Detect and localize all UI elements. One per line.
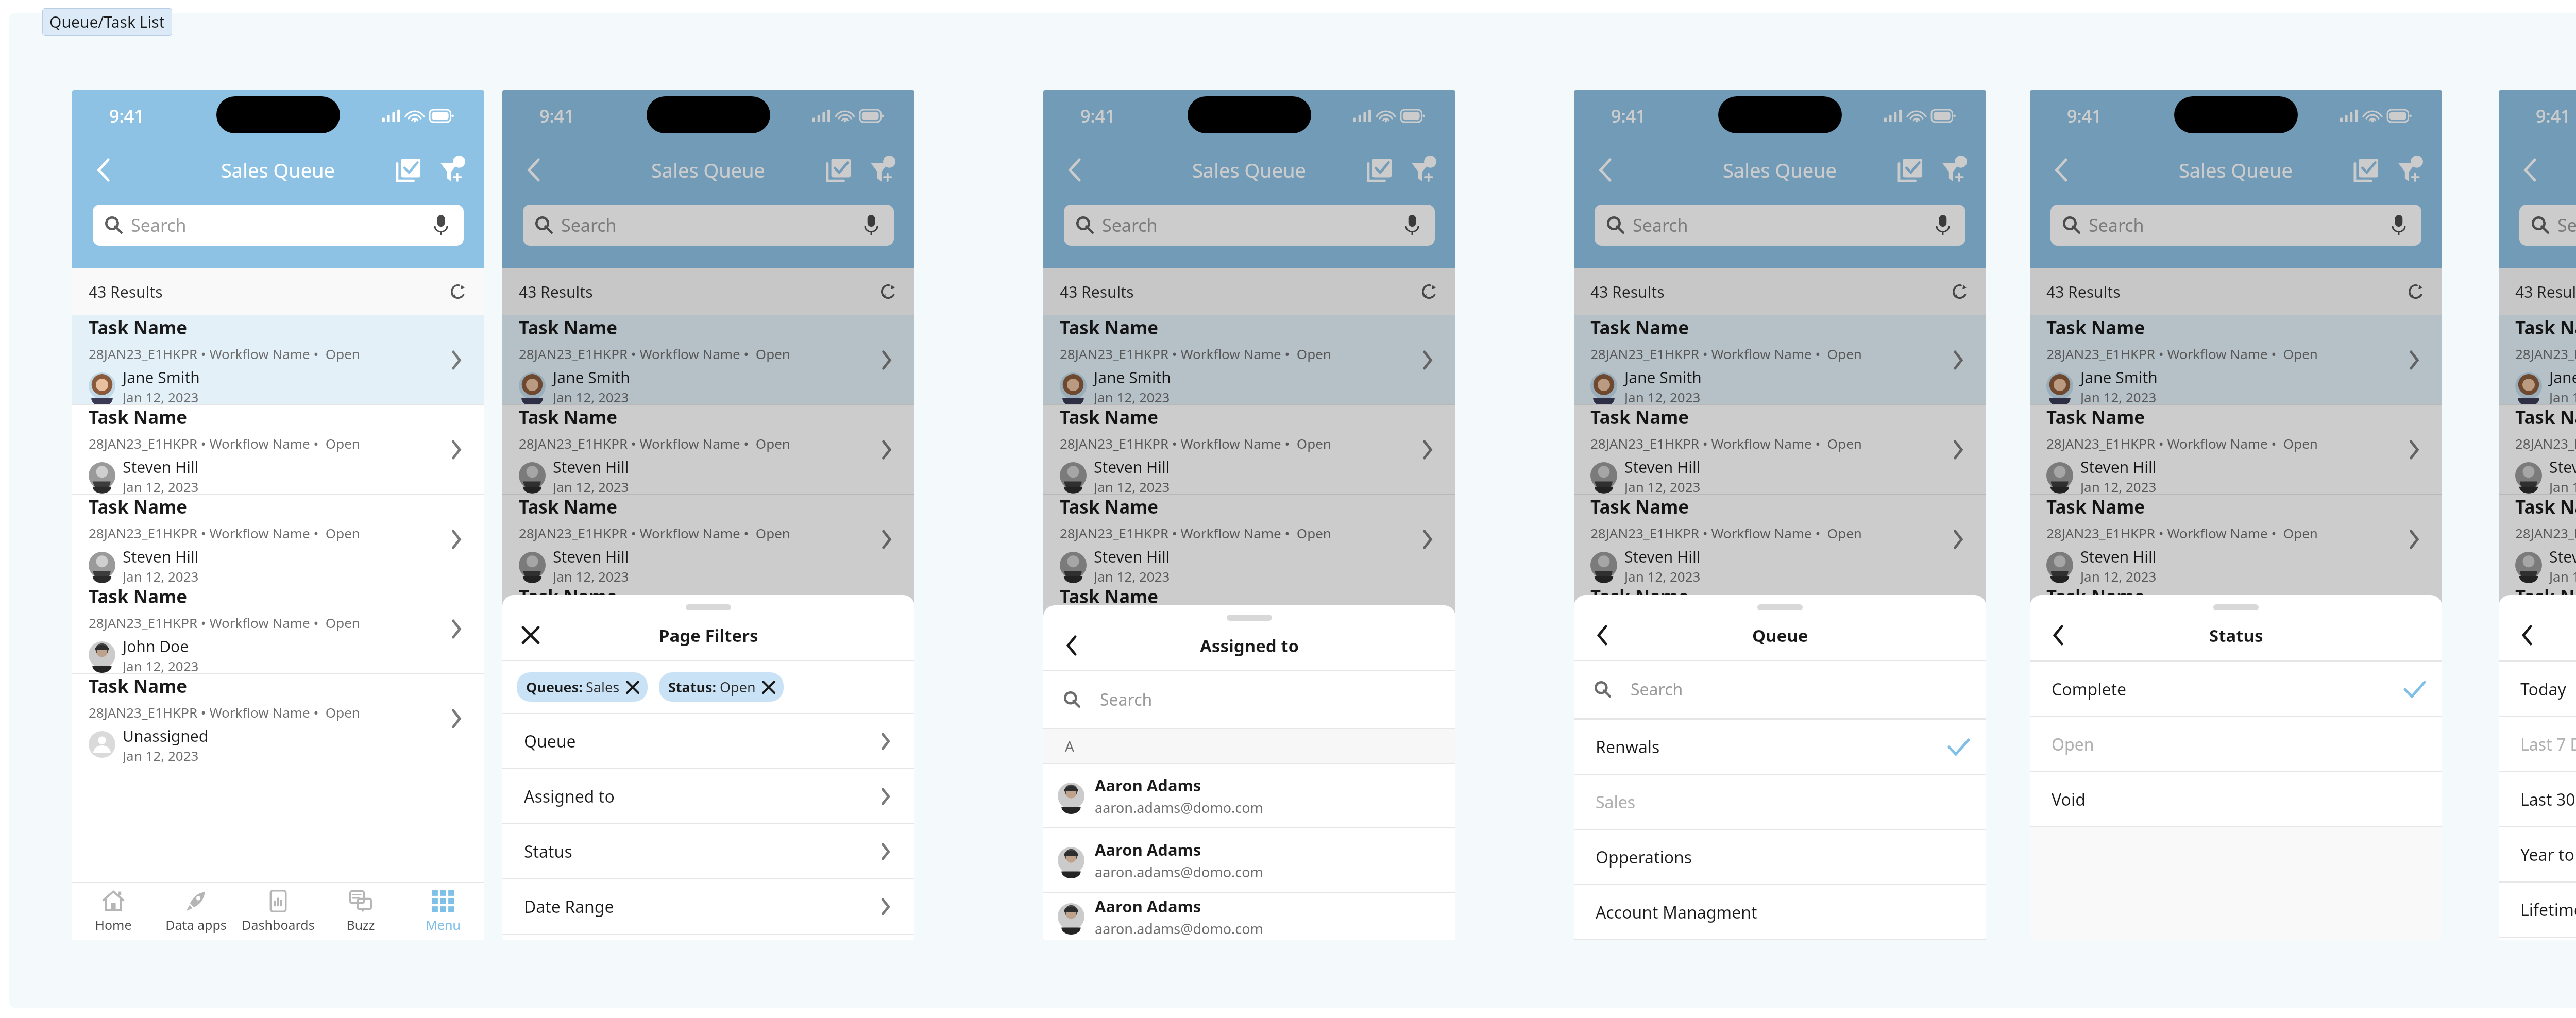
button[interactable]: Task Name — [2030, 495, 2442, 584]
button[interactable]: Buzz — [319, 883, 402, 940]
button[interactable]: Voice search — [1399, 212, 1426, 239]
button[interactable]: Back — [1057, 631, 1087, 660]
button[interactable]: Task Name — [1043, 495, 1455, 584]
button[interactable]: Voice search — [2385, 212, 2412, 239]
button[interactable]: Back — [2512, 620, 2542, 650]
button[interactable]: Task Name — [502, 584, 914, 673]
button[interactable]: Back — [88, 154, 120, 186]
button[interactable]: Search — [1064, 205, 1435, 246]
staticText: Aaron Adams — [1095, 774, 1201, 796]
button[interactable]: Task Name — [2030, 315, 2442, 404]
button[interactable]: Task Name — [502, 495, 914, 584]
button[interactable]: Task Name — [72, 405, 484, 494]
button[interactable]: Task Name — [2030, 405, 2442, 494]
button[interactable]: Task Name — [1574, 674, 1986, 763]
button[interactable]: Task Name — [72, 584, 484, 673]
button[interactable]: Home — [72, 883, 155, 940]
button[interactable]: Menu — [402, 883, 484, 940]
button[interactable]: Last 30 Days — [2499, 772, 2576, 826]
button[interactable]: Task Name — [2499, 584, 2576, 673]
button[interactable]: Queues: — [517, 672, 648, 702]
button[interactable]: Multi select — [394, 155, 423, 185]
button[interactable]: Dashboards — [237, 883, 319, 940]
button[interactable]: Search — [93, 205, 464, 246]
button[interactable]: Task Name — [502, 405, 914, 494]
button[interactable]: Data apps — [155, 883, 237, 940]
button[interactable]: Multi select — [1895, 155, 1925, 185]
button[interactable]: Back — [1059, 154, 1091, 186]
button[interactable]: Add filter — [1939, 155, 1969, 185]
button[interactable]: Multi select — [2351, 155, 2381, 185]
button[interactable]: Task Name — [2499, 674, 2576, 763]
button[interactable]: Aaron Adams — [1043, 764, 1455, 827]
button[interactable]: Sales — [1574, 775, 1986, 829]
button[interactable]: Account Managment — [1574, 885, 1986, 939]
button[interactable]: Renwals — [1574, 720, 1986, 774]
button[interactable]: Voice search — [858, 212, 885, 239]
button[interactable]: Complete — [2030, 662, 2442, 716]
button[interactable]: Search — [2519, 205, 2576, 246]
button[interactable]: Task Name — [1043, 315, 1455, 404]
button[interactable]: Back — [1589, 154, 1621, 186]
button[interactable]: Search — [523, 205, 894, 246]
button[interactable]: Aaron Adams — [1043, 893, 1455, 940]
button[interactable]: Assigned to — [502, 769, 914, 823]
button[interactable]: Task Name — [1574, 584, 1986, 673]
button[interactable]: Task Name — [2499, 495, 2576, 584]
button[interactable]: Refresh — [874, 278, 902, 306]
staticText: Jan 12, 2023 — [123, 746, 199, 763]
button[interactable]: Status: — [659, 672, 784, 702]
button[interactable]: Refresh — [2402, 278, 2430, 306]
button[interactable]: Year to Date — [2499, 827, 2576, 881]
button[interactable]: Add filter — [437, 155, 467, 185]
button[interactable]: Opperations — [1574, 830, 1986, 884]
button[interactable]: Task Name — [1043, 674, 1455, 763]
button[interactable]: Close — [516, 620, 546, 650]
button[interactable]: Refresh — [1415, 278, 1443, 306]
button[interactable]: Task Name — [502, 315, 914, 404]
button[interactable]: Task Name — [1043, 584, 1455, 673]
button[interactable]: Search — [1595, 205, 1965, 246]
button[interactable]: Task Name — [2030, 584, 2442, 673]
button[interactable]: Back — [2045, 154, 2077, 186]
button[interactable]: Voice search — [428, 212, 454, 239]
button[interactable]: Back — [2514, 154, 2546, 186]
button[interactable]: Lifetime — [2499, 883, 2576, 937]
button[interactable]: Task Name — [72, 495, 484, 584]
button[interactable]: Refresh — [444, 278, 472, 306]
button[interactable]: Multi select — [1365, 155, 1395, 185]
button[interactable]: Task Name — [502, 674, 914, 763]
staticText: Task Name — [519, 674, 618, 699]
button[interactable]: Task Name — [2030, 674, 2442, 763]
button[interactable]: Task Name — [1574, 315, 1986, 404]
button[interactable]: Search — [1574, 661, 1986, 718]
button[interactable]: Task Name — [2499, 405, 2576, 494]
button[interactable]: Queue/Task List — [42, 8, 172, 36]
button[interactable]: Task Name — [1043, 405, 1455, 494]
button[interactable]: Task Name — [72, 674, 484, 763]
button[interactable]: Search — [1043, 671, 1455, 728]
button[interactable]: Add filter — [1408, 155, 1438, 185]
button[interactable]: Void — [2030, 772, 2442, 826]
button[interactable]: Multi select — [824, 155, 854, 185]
button[interactable]: Search — [2050, 205, 2421, 246]
button[interactable]: Refresh — [1946, 278, 1974, 306]
button[interactable]: Queue — [502, 714, 914, 768]
button[interactable]: Voice search — [1929, 212, 1956, 239]
button[interactable]: Status — [502, 824, 914, 878]
button[interactable]: Task Name — [2499, 315, 2576, 404]
button[interactable]: Today — [2499, 662, 2576, 716]
button[interactable]: Task Name — [72, 315, 484, 404]
button[interactable]: Add filter — [2395, 155, 2425, 185]
button[interactable]: Task Name — [1574, 495, 1986, 584]
button[interactable]: Open — [2030, 717, 2442, 771]
button[interactable]: Last 7 Days — [2499, 717, 2576, 771]
button[interactable]: Date Range — [502, 879, 914, 934]
button[interactable]: Add filter — [867, 155, 897, 185]
button[interactable]: Back — [518, 154, 550, 186]
button[interactable]: Back — [1587, 620, 1617, 650]
button[interactable]: Aaron Adams — [1043, 828, 1455, 892]
button[interactable]: Task Name — [1574, 405, 1986, 494]
button[interactable]: Back — [2043, 620, 2073, 650]
